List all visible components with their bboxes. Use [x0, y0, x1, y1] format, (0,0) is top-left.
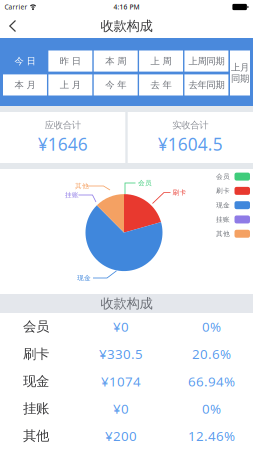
staticText: 去 年	[151, 79, 172, 91]
staticText: 今 年	[105, 79, 126, 91]
staticText: 刷卡	[216, 187, 230, 195]
button[interactable]: 上周同期	[184, 50, 228, 72]
staticText: 现金	[216, 201, 230, 209]
button[interactable]: Back	[3, 15, 22, 37]
staticText: ¥0	[113, 318, 129, 335]
staticText: 现金	[23, 373, 49, 389]
staticText: Carrier	[4, 3, 27, 11]
staticText: 66.94%	[188, 372, 235, 390]
staticText: 0%	[202, 400, 221, 417]
staticText: 收款构成	[100, 295, 152, 312]
staticText: 会员	[23, 318, 49, 335]
staticText: ¥1604.5	[158, 132, 223, 155]
staticText: 收款构成	[100, 18, 152, 34]
staticText: 现金	[77, 274, 91, 282]
staticText: 上月 同期	[231, 61, 249, 84]
button[interactable]: 上 周	[139, 50, 183, 72]
staticText: 上周同期	[188, 55, 224, 67]
staticText: 挂账	[216, 215, 230, 224]
staticText: 实收合计	[172, 119, 208, 131]
button[interactable]: 本 周	[94, 50, 138, 72]
staticText: 昨 日	[60, 55, 81, 67]
staticText: 会员	[216, 172, 230, 181]
staticText: 挂账	[23, 400, 49, 417]
staticText: 其他	[216, 230, 230, 238]
staticText: ¥1074	[101, 372, 141, 390]
staticText: 其他	[23, 428, 49, 444]
staticText: 4:16 PM	[113, 3, 139, 11]
staticText: 上 周	[151, 55, 172, 67]
staticText: 其他	[75, 182, 89, 190]
staticText: ¥1646	[38, 132, 88, 155]
button[interactable]: 上 月	[48, 74, 92, 95]
button[interactable]: 今 年	[94, 74, 138, 95]
staticText: 本 周	[105, 55, 126, 67]
staticText: 刷卡	[23, 346, 49, 362]
staticText: 挂账	[65, 191, 79, 199]
button[interactable]: 今 日	[3, 50, 47, 72]
staticText: 应收合计	[45, 119, 81, 131]
staticText: ¥330.5	[99, 345, 143, 363]
staticText: 12.46%	[188, 427, 235, 445]
staticText: 本 月	[14, 79, 35, 91]
staticText: 20.6%	[192, 345, 231, 363]
button[interactable]: 本 月	[3, 74, 47, 95]
staticText: 刷卡	[172, 188, 186, 197]
staticText: 0%	[202, 318, 221, 335]
staticText: 上 月	[60, 79, 81, 91]
staticText: ¥0	[113, 400, 129, 417]
button[interactable]: 去年同期	[184, 74, 228, 95]
staticText: ¥200	[105, 427, 137, 445]
staticText: 会员	[138, 179, 152, 187]
button[interactable]: 去 年	[139, 74, 183, 95]
staticText: 今 日	[14, 55, 35, 67]
button[interactable]: 昨 日	[48, 50, 92, 72]
staticText: 去年同期	[188, 79, 224, 91]
button[interactable]: 上月 同期	[230, 50, 250, 95]
